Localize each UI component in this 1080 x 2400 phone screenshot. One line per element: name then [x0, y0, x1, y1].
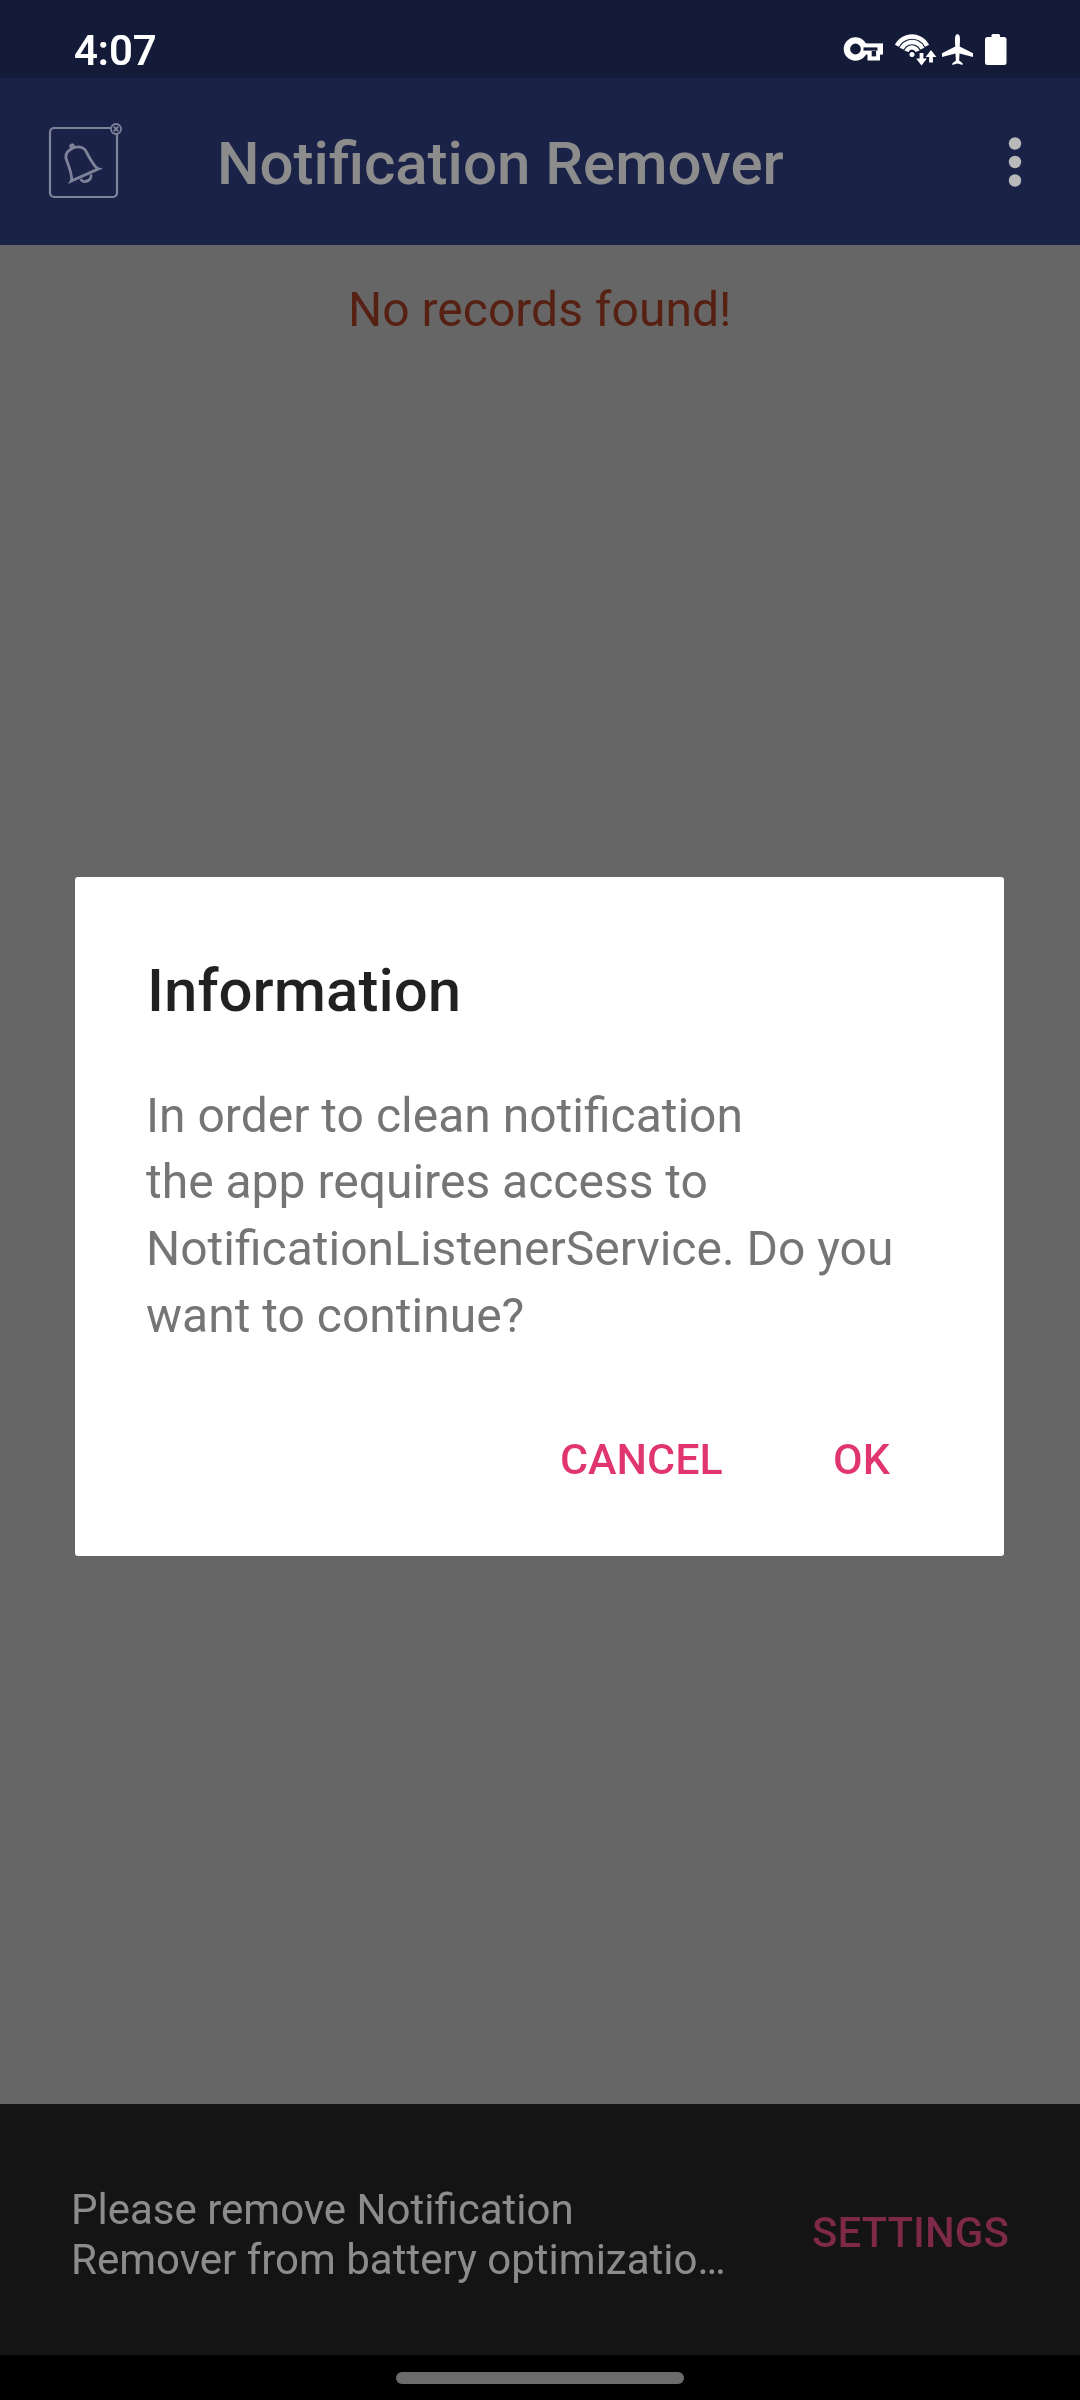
- other: VPN, Wi-Fi, airplane mode and battery: [840, 0, 1020, 78]
- staticText: Information: [147, 955, 462, 1025]
- button[interactable]: More options: [960, 107, 1070, 217]
- button[interactable]: SETTINGS: [792, 2190, 1029, 2275]
- staticText: 4:07: [74, 26, 157, 75]
- staticText: Notification Remover: [217, 128, 784, 198]
- staticText: CANCEL: [560, 1434, 723, 1484]
- staticText: In order to clean notification the app r…: [146, 1087, 946, 1343]
- staticText: OK: [833, 1434, 890, 1484]
- staticText: SETTINGS: [812, 2208, 1009, 2257]
- button[interactable]: CANCEL: [536, 1414, 747, 1504]
- staticText: No records found!: [348, 281, 732, 337]
- button[interactable]: Notification Remover app icon: [33, 104, 148, 219]
- button[interactable]: OK: [809, 1414, 914, 1504]
- staticText: Please remove Notification Remover from …: [71, 2185, 771, 2284]
